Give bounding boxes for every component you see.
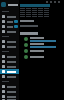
button[interactable] [19,36,64,42]
button[interactable] [0,99,19,100]
button[interactable] [0,29,19,34]
button[interactable] [0,14,19,19]
button[interactable] [19,42,64,48]
button[interactable] [19,54,64,60]
button[interactable] [0,84,19,89]
button[interactable] [0,24,19,29]
button[interactable] [0,69,19,74]
button[interactable] [0,54,19,59]
button[interactable] [0,39,19,44]
button[interactable] [0,64,19,69]
button[interactable] [19,48,64,54]
button[interactable] [0,89,19,94]
button[interactable] [0,94,19,99]
button[interactable] [0,44,19,49]
button[interactable] [0,74,19,79]
button[interactable]: App [0,0,19,9]
button[interactable] [0,19,19,24]
button[interactable] [0,59,19,64]
